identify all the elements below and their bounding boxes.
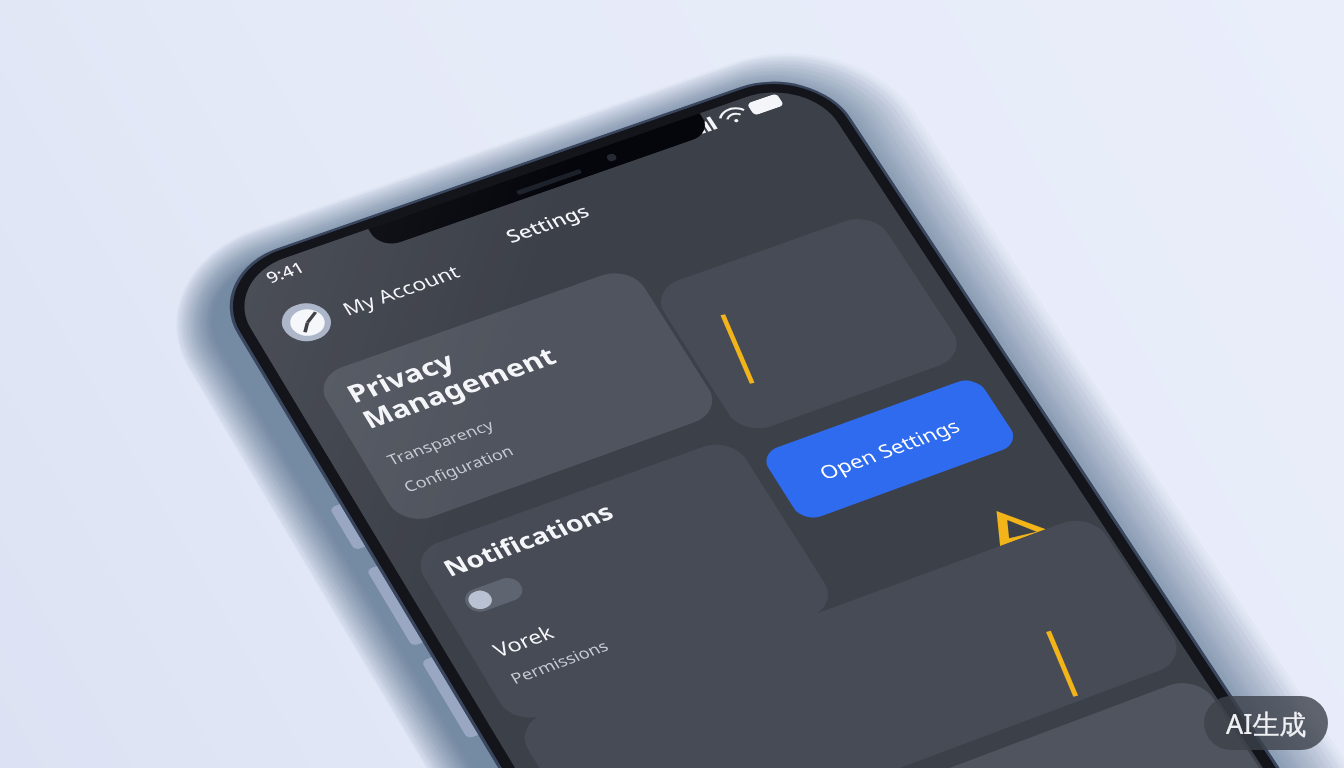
staticText: Permissions: [506, 635, 612, 688]
staticText: Notifications: [437, 496, 620, 583]
staticText: Privacy Management: [340, 314, 563, 436]
staticText: My Account: [337, 259, 464, 321]
button[interactable]: Data Settings: [513, 512, 1188, 768]
staticText: AI生成: [1226, 705, 1307, 742]
button[interactable]: Toggle notifications: [460, 574, 527, 615]
staticText: Configuration: [399, 440, 518, 496]
staticText: 9:41: [261, 256, 308, 287]
staticText: Open Settings: [814, 413, 966, 485]
button[interactable]: My Account: [273, 251, 469, 348]
staticText: Transparency: [383, 414, 498, 469]
button[interactable]: [615, 674, 1304, 768]
button[interactable]: Open Settings: [759, 375, 1021, 523]
staticText: Vorek: [488, 619, 559, 662]
button[interactable]: [650, 211, 968, 437]
staticText: Settings: [500, 198, 594, 248]
button[interactable]: Notifications: [409, 436, 840, 726]
button[interactable]: Play: [969, 490, 1077, 574]
button[interactable]: Privacy Management: [313, 265, 723, 527]
